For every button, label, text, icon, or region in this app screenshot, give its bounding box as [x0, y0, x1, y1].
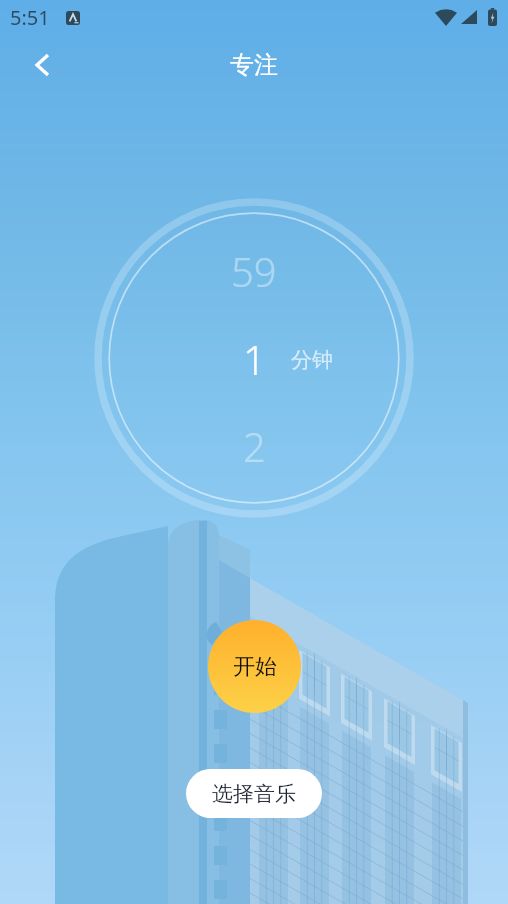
staticText: 5:51: [10, 4, 50, 31]
staticText: 分钟: [291, 347, 333, 373]
button[interactable]: 开始: [208, 620, 301, 713]
staticText: 专注: [230, 50, 278, 80]
staticText: 开始: [233, 653, 277, 681]
staticText: 2: [243, 419, 266, 473]
button[interactable]: 选择音乐: [186, 769, 322, 818]
staticText: 选择音乐: [212, 781, 296, 807]
staticText: 59: [231, 244, 277, 298]
button[interactable]: Back: [21, 44, 63, 86]
staticText: 1: [243, 332, 266, 386]
